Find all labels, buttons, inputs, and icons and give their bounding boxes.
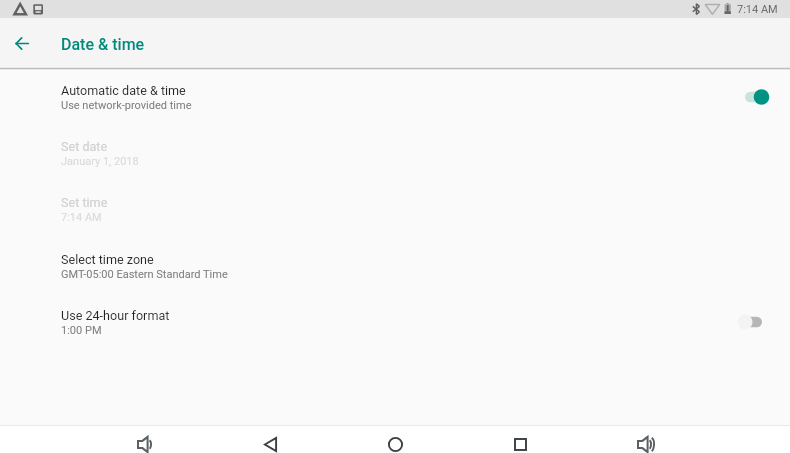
button[interactable]: Select time zone [0,240,790,292]
staticText: 7:14 AM [61,211,102,224]
button[interactable]: Automatic date & time [0,71,790,123]
staticText: GMT-05:00 Eastern Standard Time [61,268,228,281]
staticText: Set time [61,195,108,210]
button[interactable]: Recent apps [489,426,551,453]
button[interactable]: Home [364,426,426,453]
staticText: Automatic date & time [61,83,186,98]
staticText: 1:00 PM [61,324,102,337]
button[interactable]: Use 24-hour format [0,296,790,348]
button[interactable]: Back [239,426,301,453]
button[interactable]: Volume down [114,426,176,453]
staticText: Use 24-hour format [61,308,170,323]
staticText: January 1, 2018 [61,155,139,168]
button[interactable]: Toggle on [735,87,771,107]
staticText: Set date [61,139,108,154]
staticText: Use network-provided time [61,99,192,112]
staticText: 7:14 AM [737,3,778,16]
button[interactable]: Back [3,24,41,62]
button[interactable]: Toggle off [735,312,771,332]
button[interactable]: Volume up [614,426,676,453]
staticText: Select time zone [61,252,154,267]
staticText: Date & time [61,35,145,54]
